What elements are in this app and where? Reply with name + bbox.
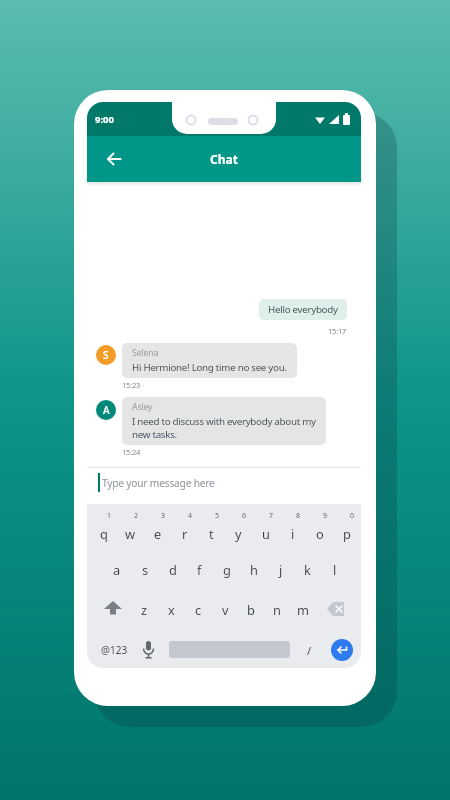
staticText: Asley (132, 401, 153, 413)
button[interactable]: @123 (95, 640, 133, 660)
staticText: a (113, 561, 121, 578)
staticText: 9 (323, 511, 328, 521)
staticText: @123 (101, 643, 128, 657)
button[interactable]: f (186, 555, 213, 583)
staticText: 3 (161, 511, 166, 521)
staticText: m (297, 601, 309, 618)
staticText: i (291, 525, 295, 542)
button[interactable]: u (252, 519, 279, 547)
button[interactable]: z (131, 595, 158, 623)
staticText: s (142, 561, 149, 578)
staticText: k (304, 561, 311, 578)
button[interactable]: Hello everybody (259, 299, 347, 320)
staticText: 4 (188, 511, 193, 521)
button[interactable]: Selena (122, 343, 297, 378)
staticText: b (247, 601, 255, 618)
button[interactable]: h (240, 555, 267, 583)
staticText: 2 (134, 511, 139, 521)
button[interactable]: c (185, 595, 212, 623)
staticText: 0 (350, 511, 355, 521)
button[interactable]: e (144, 519, 171, 547)
staticText: r (182, 525, 188, 542)
staticText: e (154, 525, 162, 542)
staticText: Selena (132, 347, 159, 359)
button[interactable]: s (131, 555, 159, 583)
staticText: p (343, 525, 351, 542)
button[interactable]: t (198, 519, 225, 547)
button[interactable]: d (159, 555, 186, 583)
button[interactable]: Asley (122, 397, 326, 445)
staticText: d (169, 561, 177, 578)
staticText: S (103, 348, 109, 362)
staticText: u (262, 525, 270, 542)
button[interactable]: i (279, 519, 306, 547)
staticText: 15:17 (328, 326, 347, 336)
staticText: Hello everybody (268, 303, 338, 316)
staticText: f (197, 561, 202, 578)
button[interactable]: j (267, 555, 294, 583)
button[interactable]: b (238, 595, 264, 623)
button[interactable]: r (171, 519, 198, 547)
button[interactable]: / (301, 640, 317, 660)
staticText: 8 (296, 511, 301, 521)
staticText: Chat (210, 151, 238, 167)
staticText: / (307, 643, 312, 658)
staticText: g (223, 561, 231, 578)
button[interactable]: x (158, 595, 185, 623)
staticText: c (195, 601, 202, 618)
button[interactable]: w (117, 519, 144, 547)
staticText: 9:00 (95, 113, 114, 126)
staticText: 1 (107, 511, 112, 521)
staticText: q (100, 525, 108, 542)
staticText: o (316, 525, 324, 542)
staticText: 6 (242, 511, 247, 521)
button[interactable]: k (294, 555, 321, 583)
button[interactable]: p (333, 519, 360, 547)
staticText: 7 (269, 511, 274, 521)
staticText: t (209, 525, 214, 542)
button[interactable]: Type your message here (102, 468, 361, 498)
staticText: 15:23 (122, 380, 141, 390)
staticText: 15:24 (122, 447, 141, 457)
staticText: w (125, 525, 136, 542)
staticText: Type your message here (102, 476, 215, 490)
button[interactable] (331, 639, 353, 661)
button[interactable]: n (264, 595, 290, 623)
staticText: x (168, 601, 175, 618)
staticText: z (141, 601, 148, 618)
staticText: A (103, 403, 110, 417)
button[interactable]: g (213, 555, 240, 583)
staticText: j (279, 561, 283, 578)
staticText: Hi Hermione! Long time no see you. (132, 361, 287, 374)
button[interactable]: y (225, 519, 252, 547)
button[interactable]: l (321, 555, 348, 583)
button[interactable]: v (212, 595, 238, 623)
button[interactable] (104, 601, 122, 616)
staticText: 5 (215, 511, 220, 521)
staticText: n (273, 601, 281, 618)
staticText: h (250, 561, 258, 578)
button[interactable]: a (103, 555, 131, 583)
button[interactable]: o (306, 519, 333, 547)
button[interactable] (106, 151, 122, 167)
button[interactable]: m (290, 595, 316, 623)
button[interactable]: q (90, 519, 117, 547)
staticText: I need to discuss with everybody about m… (132, 415, 316, 441)
staticText: y (235, 525, 242, 542)
staticText: l (333, 561, 337, 578)
staticText: v (222, 601, 229, 618)
button[interactable] (141, 640, 156, 660)
button[interactable] (327, 602, 347, 616)
